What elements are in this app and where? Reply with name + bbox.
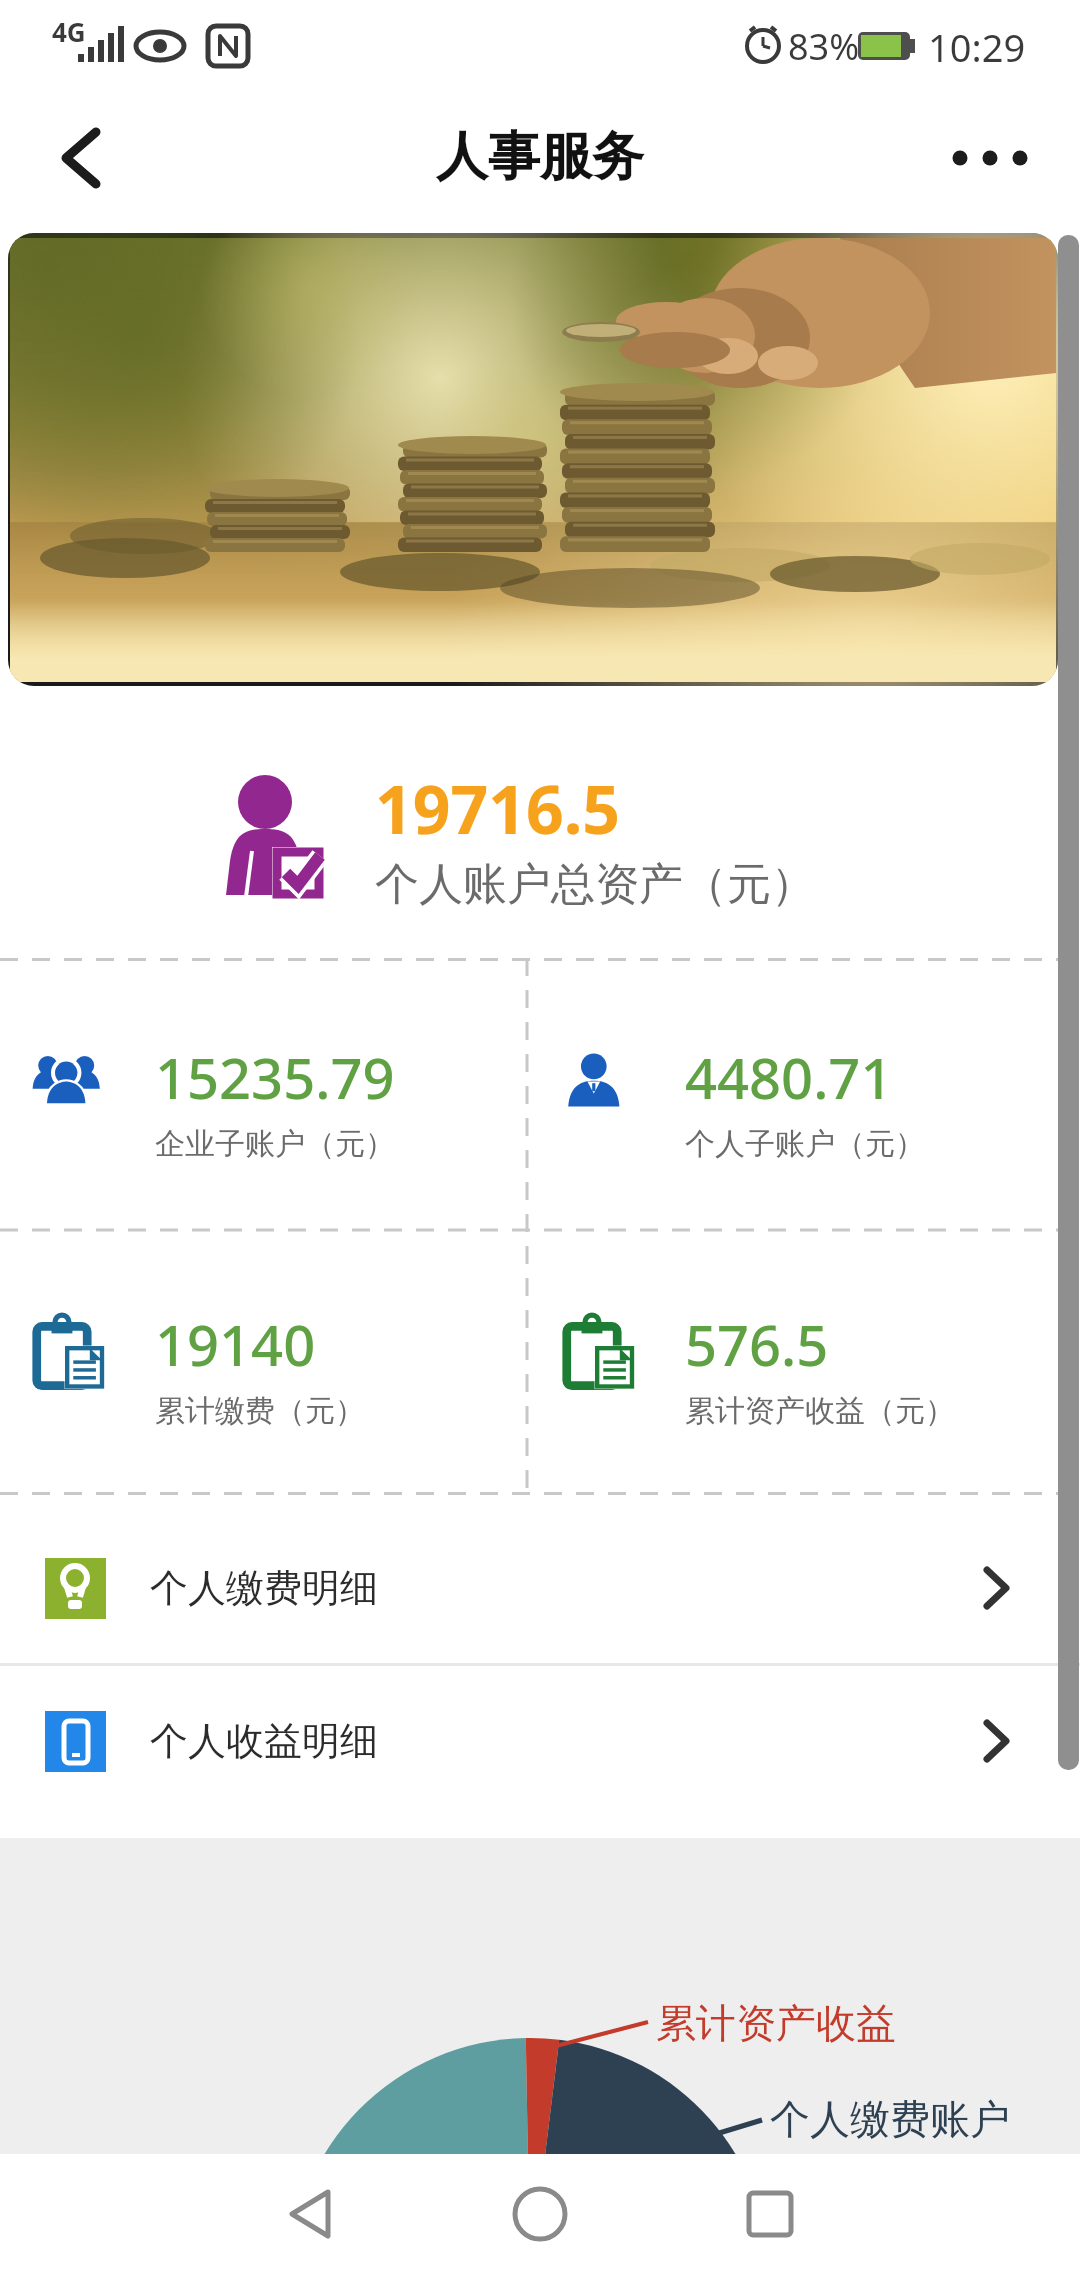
button[interactable]: 4480.71 <box>565 1039 1020 1239</box>
staticText: 19716.5 <box>375 763 621 853</box>
staticText: 个人收益明细 <box>150 1717 378 1765</box>
button[interactable]: 19140 <box>35 1306 490 1506</box>
button[interactable] <box>40 118 120 198</box>
staticText: 累计资产收益（元） <box>685 1392 955 1430</box>
staticText: 4480.71 <box>685 1039 893 1115</box>
staticText: 累计缴费（元） <box>155 1392 365 1430</box>
staticText: 企业子账户（元） <box>155 1125 395 1163</box>
button[interactable] <box>490 2164 590 2264</box>
staticText: 83% <box>788 22 860 71</box>
button[interactable]: 个人收益明细 <box>0 1666 1080 1816</box>
staticText: 10:29 <box>928 21 1026 73</box>
staticText: 人事服务 <box>436 124 644 190</box>
staticText: 15235.79 <box>155 1039 395 1115</box>
staticText: 4G <box>52 14 86 49</box>
staticText: 个人账户总资产（元） <box>375 857 815 912</box>
staticText: 576.5 <box>685 1306 829 1382</box>
button[interactable] <box>940 118 1040 198</box>
button[interactable]: 576.5 <box>565 1306 1020 1506</box>
button[interactable]: 15235.79 <box>35 1039 490 1239</box>
button[interactable] <box>260 2164 360 2264</box>
staticText: 累计资产收益 <box>656 1998 896 2048</box>
staticText: 个人子账户（元） <box>685 1125 925 1163</box>
staticText: 个人缴费明细 <box>150 1564 378 1612</box>
button[interactable]: 个人缴费明细 <box>0 1513 1080 1663</box>
staticText: 个人缴费账户 <box>770 2094 1010 2144</box>
staticText: 19140 <box>155 1306 316 1382</box>
button[interactable] <box>720 2164 820 2264</box>
